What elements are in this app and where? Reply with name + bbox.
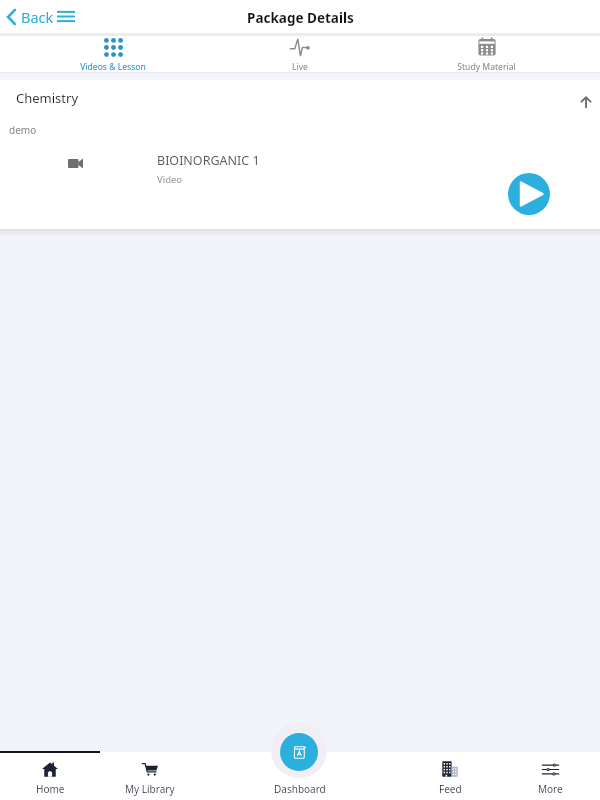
- staticText: demo: [9, 123, 37, 137]
- staticText: Back: [21, 7, 54, 27]
- button[interactable]: Videos & Lesson: [20, 36, 206, 73]
- staticText: Package Details: [247, 9, 354, 27]
- button[interactable]: Home: [10, 752, 90, 800]
- staticText: More: [538, 782, 563, 796]
- button[interactable]: Study Material: [393, 36, 580, 73]
- button[interactable]: More: [510, 752, 590, 800]
- staticText: Dashboard: [274, 782, 326, 796]
- staticText: Feed: [439, 782, 462, 796]
- button[interactable]: My Library: [110, 752, 190, 800]
- button[interactable]: Menu: [55, 5, 77, 27]
- staticText: Videos & Lesson: [80, 61, 146, 73]
- button[interactable]: Feed: [410, 752, 490, 800]
- staticText: Live: [292, 61, 308, 73]
- button[interactable]: Live: [206, 36, 393, 73]
- button[interactable]: Back: [7, 0, 54, 33]
- staticText: Study Material: [457, 61, 516, 73]
- button[interactable]: BIOINORGANIC 1: [0, 142, 600, 229]
- staticText: My Library: [125, 782, 175, 796]
- staticText: BIOINORGANIC 1: [157, 152, 260, 169]
- staticText: Video: [157, 173, 183, 186]
- staticText: Home: [36, 782, 65, 796]
- button[interactable]: Play: [508, 173, 550, 215]
- staticText: Chemistry: [16, 89, 79, 107]
- button[interactable]: Dashboard: [260, 752, 340, 800]
- button[interactable]: Chemistry: [0, 80, 600, 118]
- button[interactable]: Collapse: [575, 91, 597, 113]
- button[interactable]: Dashboard: [280, 733, 318, 771]
